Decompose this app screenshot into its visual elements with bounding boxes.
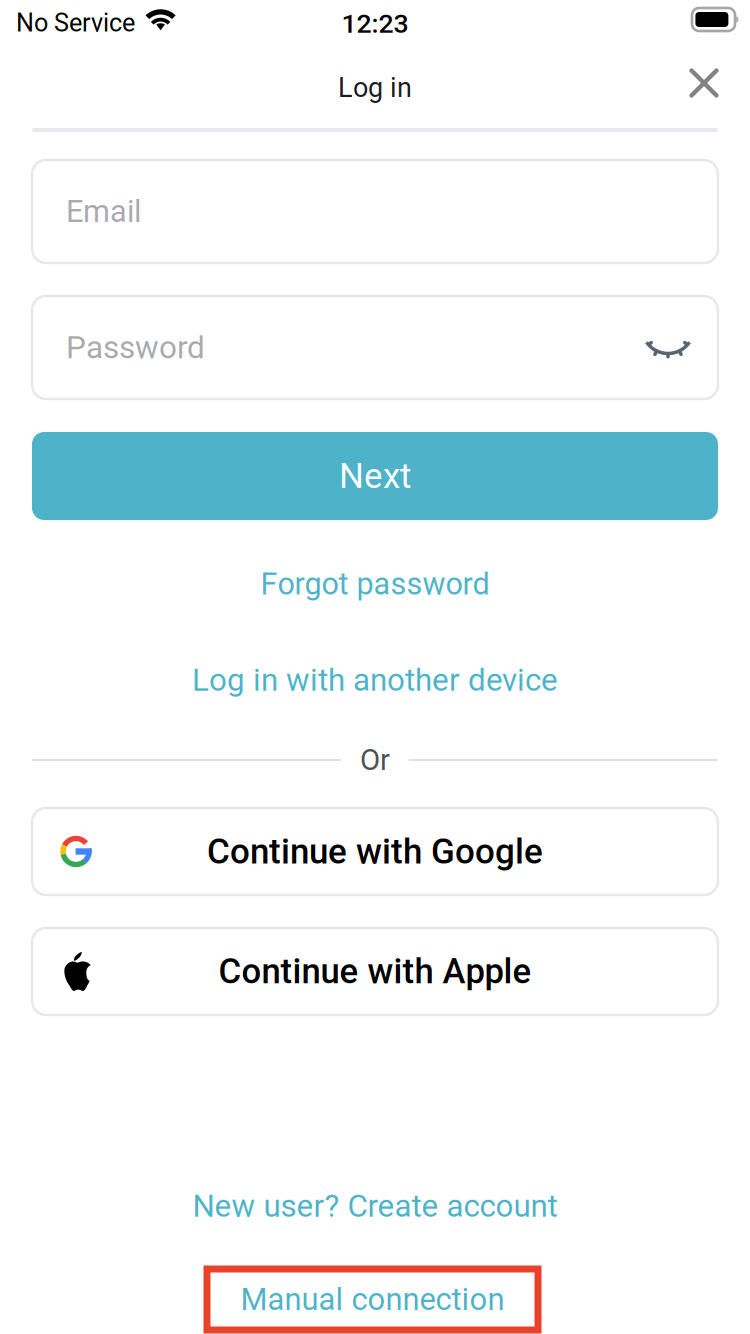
button[interactable]: Close xyxy=(671,50,737,116)
staticText: Continue with Apple xyxy=(218,951,531,992)
staticText: Forgot password xyxy=(260,566,489,602)
staticText: 12:23 xyxy=(341,8,408,39)
button[interactable]: Log in with another device xyxy=(0,652,750,708)
button[interactable]: Next xyxy=(32,432,718,520)
staticText: No Service xyxy=(16,8,135,37)
button[interactable]: Continue with Google xyxy=(32,808,718,895)
staticText: New user? Create account xyxy=(192,1188,557,1224)
button[interactable]: Manual connection xyxy=(207,1269,538,1330)
staticText: Log in xyxy=(338,72,412,104)
button[interactable]: Show password xyxy=(626,305,710,389)
staticText: Manual connection xyxy=(240,1281,504,1318)
staticText: Next xyxy=(339,455,411,496)
staticText: Or xyxy=(360,743,390,777)
staticText: Log in with another device xyxy=(192,662,558,698)
staticText: Continue with Google xyxy=(207,831,543,872)
staticText: Email xyxy=(66,193,141,229)
button[interactable]: New user? Create account xyxy=(0,1178,750,1234)
staticText: Password xyxy=(66,329,205,366)
button[interactable]: Continue with Apple xyxy=(32,928,718,1015)
button[interactable]: Forgot password xyxy=(0,556,750,612)
